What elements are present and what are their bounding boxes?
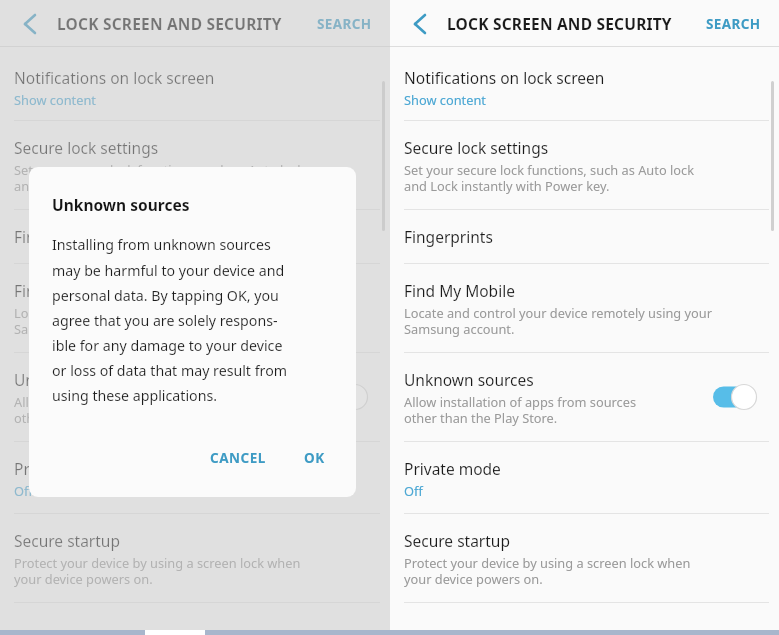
staticText: Fingerprints bbox=[404, 226, 493, 247]
button[interactable]: Secure lock settings bbox=[0, 121, 390, 209]
button[interactable]: Fingerprints bbox=[390, 210, 779, 263]
button[interactable]: Find My Mobile bbox=[390, 264, 779, 352]
staticText: Secure startup bbox=[14, 530, 120, 551]
button[interactable]: Private mode bbox=[0, 442, 390, 513]
staticText: SEARCH bbox=[317, 15, 372, 33]
button[interactable]: Unknown sources bbox=[390, 353, 779, 441]
staticText: Secure lock settings bbox=[14, 137, 159, 158]
button[interactable]: Back bbox=[8, 2, 52, 46]
staticText: Off bbox=[404, 482, 423, 499]
staticText: Set your secure lock functions, such as … bbox=[404, 161, 694, 195]
staticText: Show content bbox=[14, 91, 96, 108]
staticText: Locate and control your device remotely … bbox=[14, 304, 322, 338]
staticText: OK bbox=[304, 449, 325, 467]
staticText: Protect your device by using a screen lo… bbox=[14, 554, 301, 588]
staticText: Unknown sources bbox=[404, 369, 534, 390]
button[interactable]: Encrypt SD card bbox=[0, 603, 390, 635]
button[interactable]: Secure startup bbox=[0, 514, 390, 602]
button[interactable]: SEARCH bbox=[696, 7, 771, 41]
staticText: Unknown sources bbox=[14, 369, 144, 390]
staticText: Off bbox=[14, 482, 33, 499]
staticText: Installing from unknown sources may be h… bbox=[52, 235, 287, 405]
staticText: Secure lock settings bbox=[404, 137, 549, 158]
staticText: Find My Mobile bbox=[404, 280, 515, 301]
button[interactable]: Unknown sources bbox=[0, 353, 390, 441]
button[interactable]: Private mode bbox=[390, 442, 779, 513]
staticText: LOCK SCREEN AND SECURITY bbox=[447, 13, 672, 34]
staticText: Allow installation of apps from sources … bbox=[14, 393, 247, 427]
staticText: Private mode bbox=[404, 458, 501, 479]
button[interactable]: Notifications on lock screen bbox=[390, 55, 779, 120]
staticText: Fingerprints bbox=[14, 226, 103, 247]
staticText: Unknown sources bbox=[52, 194, 190, 215]
button[interactable]: Unknown sources toggle bbox=[324, 382, 368, 412]
button[interactable]: Secure lock settings bbox=[390, 121, 779, 209]
button[interactable]: Unknown sources toggle bbox=[713, 382, 757, 412]
staticText: Find My Mobile bbox=[14, 280, 125, 301]
button[interactable]: OK bbox=[296, 439, 333, 477]
staticText: Locate and control your device remotely … bbox=[404, 304, 712, 338]
staticText: Notifications on lock screen bbox=[404, 67, 605, 88]
button[interactable]: Notifications on lock screen bbox=[0, 55, 390, 120]
staticText: Private mode bbox=[14, 458, 111, 479]
staticText: LOCK SCREEN AND SECURITY bbox=[57, 13, 282, 34]
button[interactable]: Find My Mobile bbox=[0, 264, 390, 352]
button[interactable]: Secure startup bbox=[390, 514, 779, 602]
staticText: CANCEL bbox=[210, 449, 266, 467]
staticText: Secure startup bbox=[404, 530, 510, 551]
button[interactable]: Encrypt SD card bbox=[390, 603, 779, 635]
button[interactable]: Fingerprints bbox=[0, 210, 390, 263]
staticText: Protect your device by using a screen lo… bbox=[404, 554, 691, 588]
button[interactable]: SEARCH bbox=[307, 7, 382, 41]
button[interactable]: CANCEL bbox=[202, 439, 274, 477]
staticText: Set your secure lock functions, such as … bbox=[14, 161, 304, 195]
staticText: Allow installation of apps from sources … bbox=[404, 393, 637, 427]
button[interactable]: Back bbox=[398, 2, 442, 46]
staticText: Notifications on lock screen bbox=[14, 67, 215, 88]
staticText: Show content bbox=[404, 91, 486, 108]
staticText: SEARCH bbox=[706, 15, 761, 33]
